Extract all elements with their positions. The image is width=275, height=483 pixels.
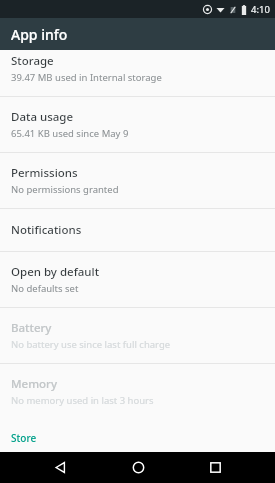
staticText: Battery xyxy=(11,320,52,336)
button[interactable]: Open by default xyxy=(0,252,275,307)
staticText: No permissions granted xyxy=(11,183,119,196)
staticText: Memory xyxy=(11,376,58,392)
button[interactable]: Notifications xyxy=(0,209,275,251)
staticText: Permissions xyxy=(11,165,78,181)
staticText: 65.41 KB used since May 9 xyxy=(11,127,129,140)
staticText: 4:10 xyxy=(251,3,270,16)
button[interactable]: Storage xyxy=(0,50,275,96)
staticText: 39.47 MB used in Internal storage xyxy=(11,71,162,84)
button[interactable]: Home xyxy=(120,452,156,483)
button[interactable]: Recent apps xyxy=(197,452,233,483)
staticText: No memory used in last 3 hours xyxy=(11,394,154,407)
button[interactable]: Data usage xyxy=(0,97,275,152)
staticText: Open by default xyxy=(11,264,100,280)
button[interactable]: Permissions xyxy=(0,153,275,208)
button[interactable]: Back xyxy=(42,452,78,483)
button[interactable]: Battery xyxy=(0,308,275,363)
button[interactable]: Store xyxy=(0,419,275,452)
staticText: No battery use since last full charge xyxy=(11,338,171,351)
button[interactable]: Memory xyxy=(0,364,275,419)
staticText: Notifications xyxy=(11,222,82,238)
staticText: Store xyxy=(11,431,37,444)
staticText: Data usage xyxy=(11,109,74,125)
staticText: No defaults set xyxy=(11,282,79,295)
staticText: Storage xyxy=(11,53,54,69)
staticText: App info xyxy=(11,25,68,44)
